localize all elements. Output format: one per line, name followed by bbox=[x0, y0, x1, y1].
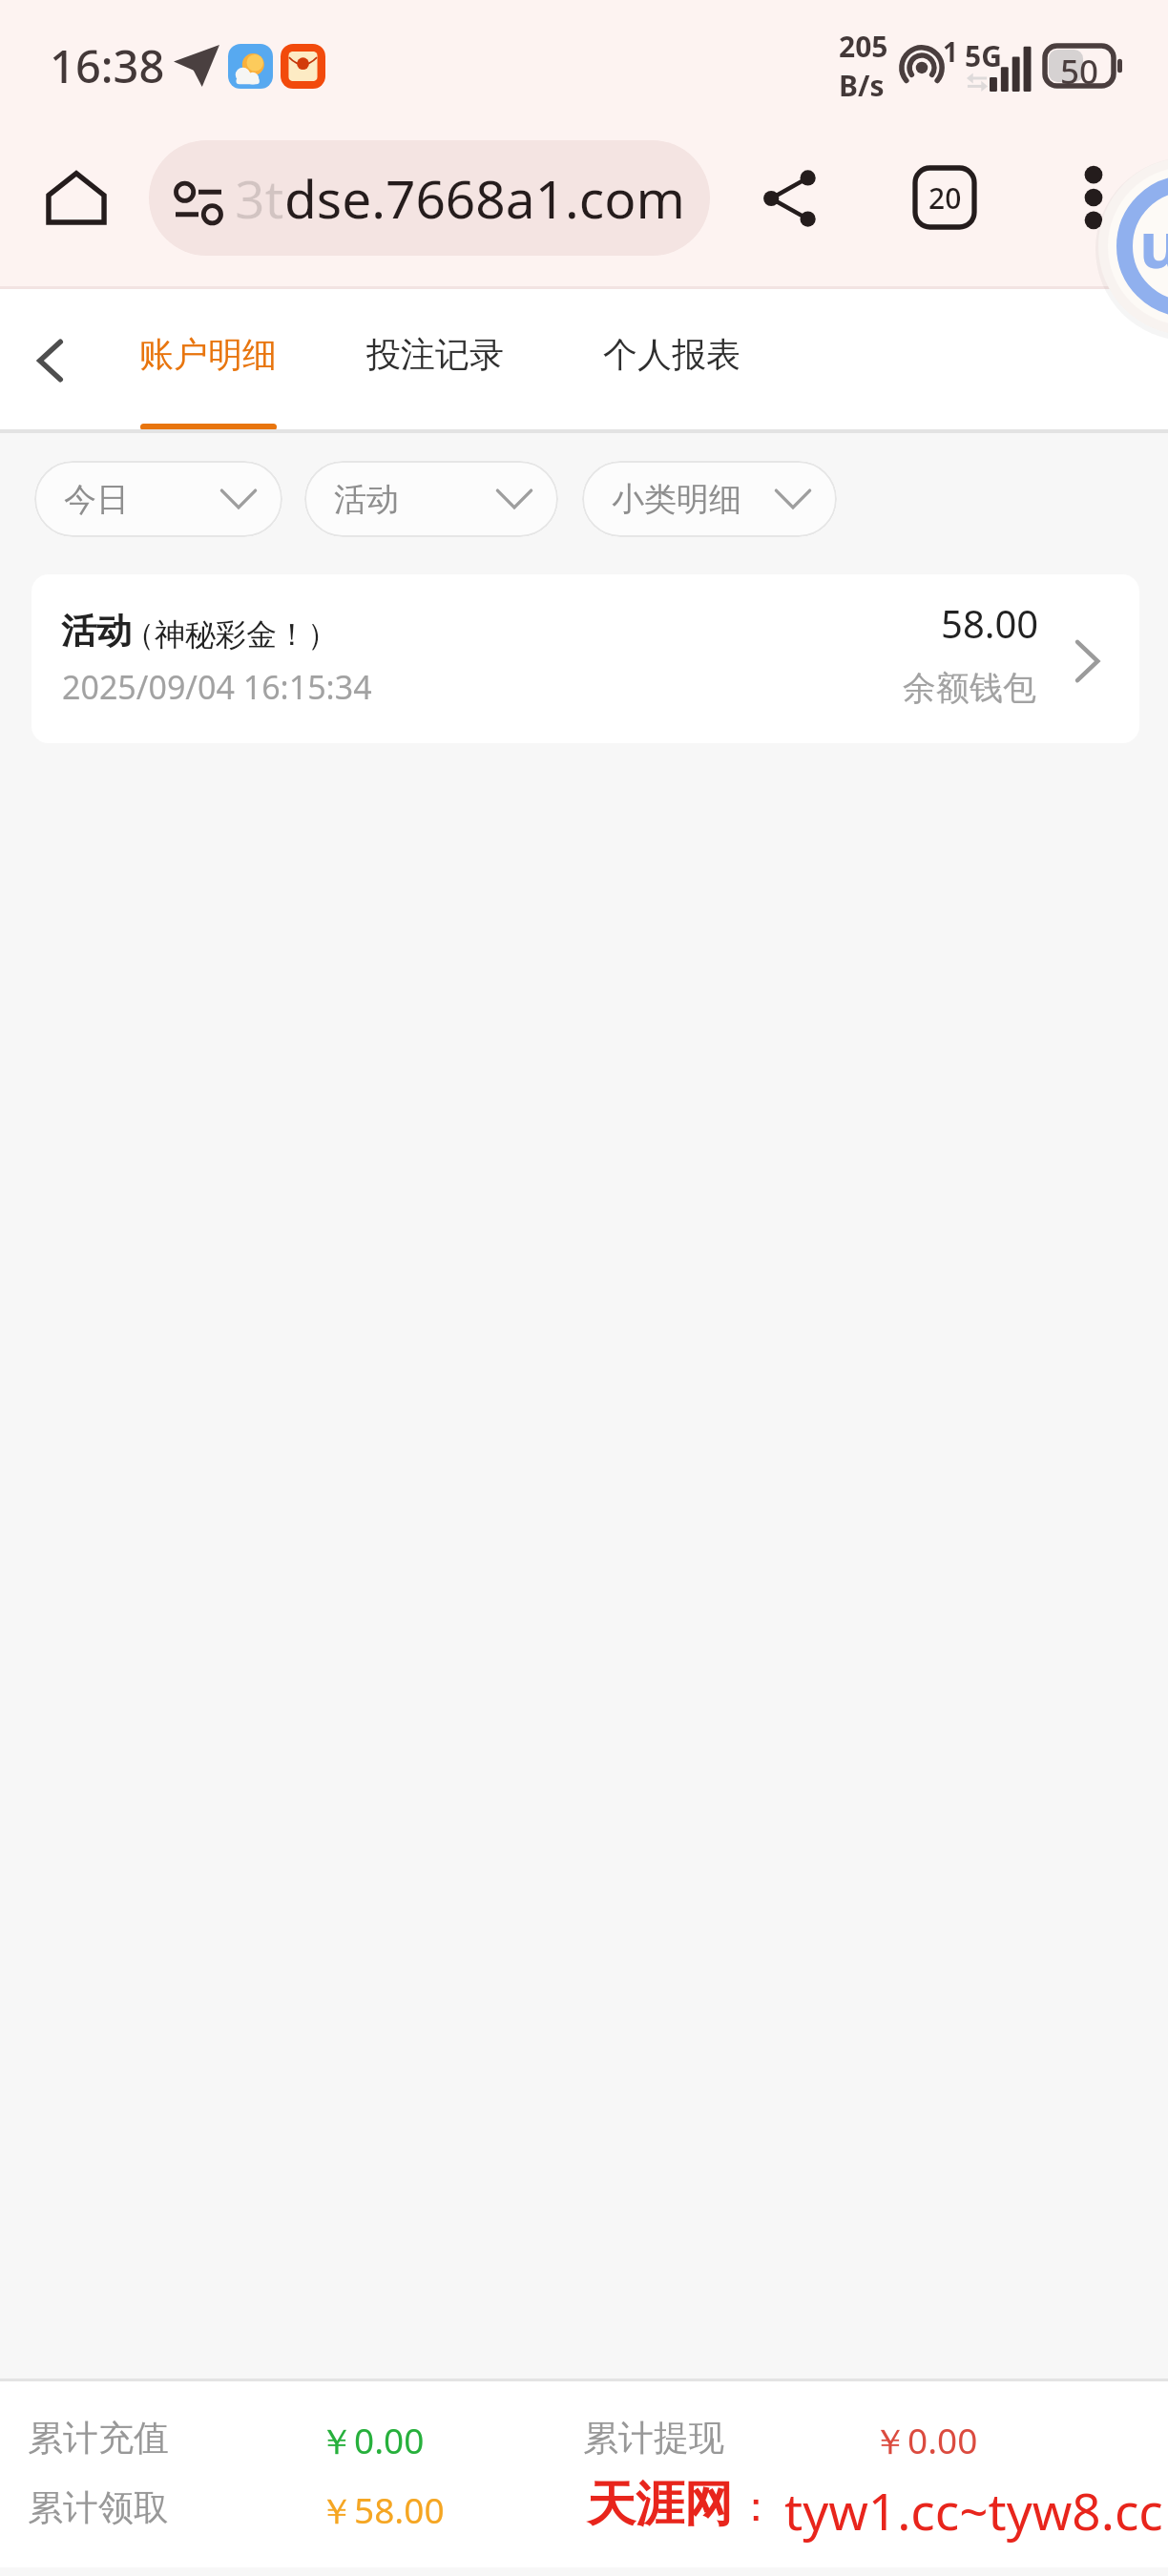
staticText: 3t bbox=[235, 162, 284, 234]
staticText: ￥58.00 bbox=[319, 2485, 445, 2534]
staticText: 58.00 bbox=[941, 597, 1039, 649]
staticText: 16:38 bbox=[50, 35, 165, 96]
staticText: dse.7668a1.com bbox=[284, 162, 685, 234]
staticText: 今日 bbox=[64, 479, 129, 520]
staticText: 活动 bbox=[334, 479, 399, 520]
button[interactable]: Tabs bbox=[915, 168, 974, 227]
button[interactable]: Back bbox=[13, 289, 90, 432]
staticText: 小类明细 bbox=[612, 479, 741, 520]
button[interactable]: 活动 bbox=[304, 461, 558, 537]
button[interactable]: 3t bbox=[149, 140, 710, 256]
staticText: u bbox=[1139, 200, 1168, 286]
button[interactable]: 个人报表 bbox=[580, 289, 763, 419]
staticText: 天涯网 bbox=[587, 2474, 733, 2535]
staticText: 20 bbox=[928, 178, 962, 218]
staticText: （神秘彩金！） bbox=[124, 615, 338, 654]
staticText: 个人报表 bbox=[603, 333, 740, 376]
button[interactable]: 小类明细 bbox=[582, 461, 837, 537]
staticText: 累计领取 bbox=[28, 2485, 169, 2530]
staticText: ： bbox=[735, 2481, 777, 2533]
staticText: 2025/09/04 16:15:34 bbox=[62, 665, 372, 709]
staticText: 余额钱包 bbox=[903, 667, 1036, 709]
staticText: B/s bbox=[839, 66, 885, 105]
staticText: ￥0.00 bbox=[319, 2416, 425, 2464]
staticText: 205 bbox=[839, 27, 888, 66]
staticText: 活动 bbox=[61, 609, 132, 654]
button[interactable]: 投注记录 bbox=[344, 289, 527, 419]
button[interactable]: Share bbox=[760, 168, 821, 229]
button[interactable]: More options bbox=[1073, 165, 1115, 230]
staticText: 5G bbox=[965, 36, 1002, 75]
button[interactable]: Home bbox=[44, 166, 109, 231]
button[interactable]: 活动 bbox=[31, 574, 1139, 743]
staticText: 1 bbox=[943, 33, 959, 70]
staticText: 投注记录 bbox=[366, 333, 504, 376]
button[interactable]: 今日 bbox=[34, 461, 282, 537]
button[interactable]: Assistant bbox=[1098, 157, 1168, 335]
staticText: 累计充值 bbox=[28, 2416, 169, 2461]
staticText: 50 bbox=[1060, 49, 1099, 89]
staticText: 账户明细 bbox=[139, 333, 277, 376]
staticText: 累计提现 bbox=[583, 2416, 724, 2461]
staticText: ￥0.00 bbox=[872, 2416, 978, 2464]
button[interactable]: 账户明细 bbox=[116, 289, 300, 419]
staticText: tyw1.cc~tyw8.cc bbox=[784, 2476, 1163, 2545]
